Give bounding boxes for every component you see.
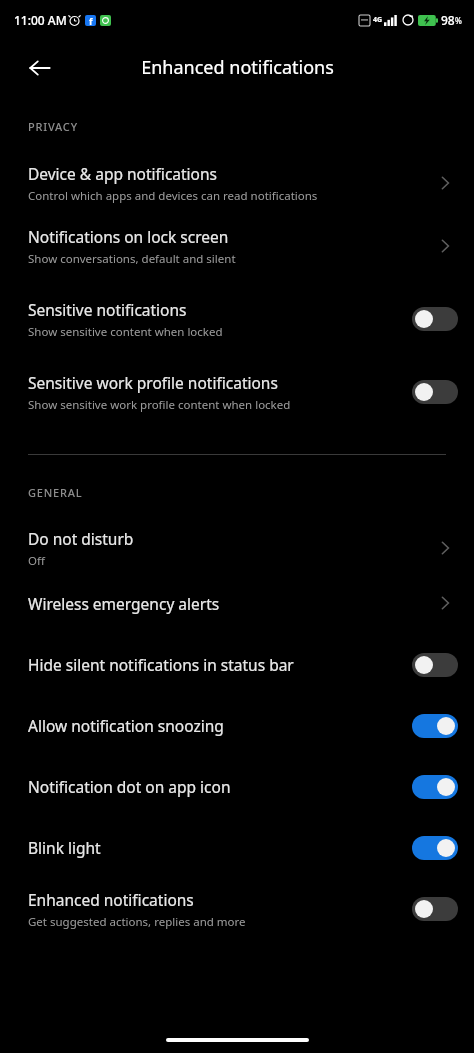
button[interactable]: Allow notification snoozing: [0, 695, 474, 756]
staticText: 98: [441, 12, 455, 28]
button[interactable]: Notifications on lock screen: [0, 210, 474, 282]
button[interactable]: Device & app notifications: [0, 156, 474, 210]
button[interactable]: Sensitive notifications: [0, 282, 474, 356]
staticText: %: [455, 15, 462, 26]
staticText: Hide silent notifications in status bar: [28, 654, 294, 675]
button[interactable]: [412, 380, 458, 404]
staticText: GENERAL: [28, 485, 83, 500]
staticText: Off: [28, 553, 45, 569]
button[interactable]: Wireless emergency alerts: [0, 572, 474, 634]
staticText: Show sensitive content when locked: [28, 324, 223, 340]
button[interactable]: [412, 897, 458, 921]
button[interactable]: Enhanced notifications: [0, 878, 474, 940]
staticText: Notifications on lock screen: [28, 226, 229, 247]
staticText: Notification dot on app icon: [28, 776, 231, 797]
button[interactable]: [412, 653, 458, 677]
staticText: Blink light: [28, 837, 101, 858]
staticText: PRIVACY: [28, 119, 78, 134]
staticText: Enhanced notifications: [141, 55, 334, 80]
button[interactable]: [412, 836, 458, 860]
staticText: Do not disturb: [28, 528, 134, 549]
button[interactable]: [412, 714, 458, 738]
button[interactable]: Blink light: [0, 817, 474, 878]
staticText: Show sensitive work profile content when…: [28, 397, 291, 413]
staticText: 11:00 AM: [14, 12, 67, 28]
staticText: Wireless emergency alerts: [28, 593, 220, 614]
staticText: Sensitive notifications: [28, 299, 187, 320]
staticText: f: [89, 15, 93, 26]
staticText: Control which apps and devices can read …: [28, 188, 318, 204]
button[interactable]: Sensitive work profile notifications: [0, 356, 474, 428]
staticText: Allow notification snoozing: [28, 715, 224, 736]
staticText: Get suggested actions, replies and more: [28, 914, 246, 930]
staticText: Device & app notifications: [28, 163, 217, 184]
staticText: Enhanced notifications: [28, 889, 194, 910]
staticText: Sensitive work profile notifications: [28, 372, 278, 393]
staticText: 4G: [373, 15, 383, 25]
button[interactable]: Hide silent notifications in status bar: [0, 634, 474, 695]
staticText: Show conversations, default and silent: [28, 251, 236, 267]
button[interactable]: [412, 307, 458, 331]
button[interactable]: Back: [22, 50, 58, 86]
button[interactable]: Notification dot on app icon: [0, 756, 474, 817]
button[interactable]: Do not disturb: [0, 524, 474, 572]
button[interactable]: [412, 775, 458, 799]
